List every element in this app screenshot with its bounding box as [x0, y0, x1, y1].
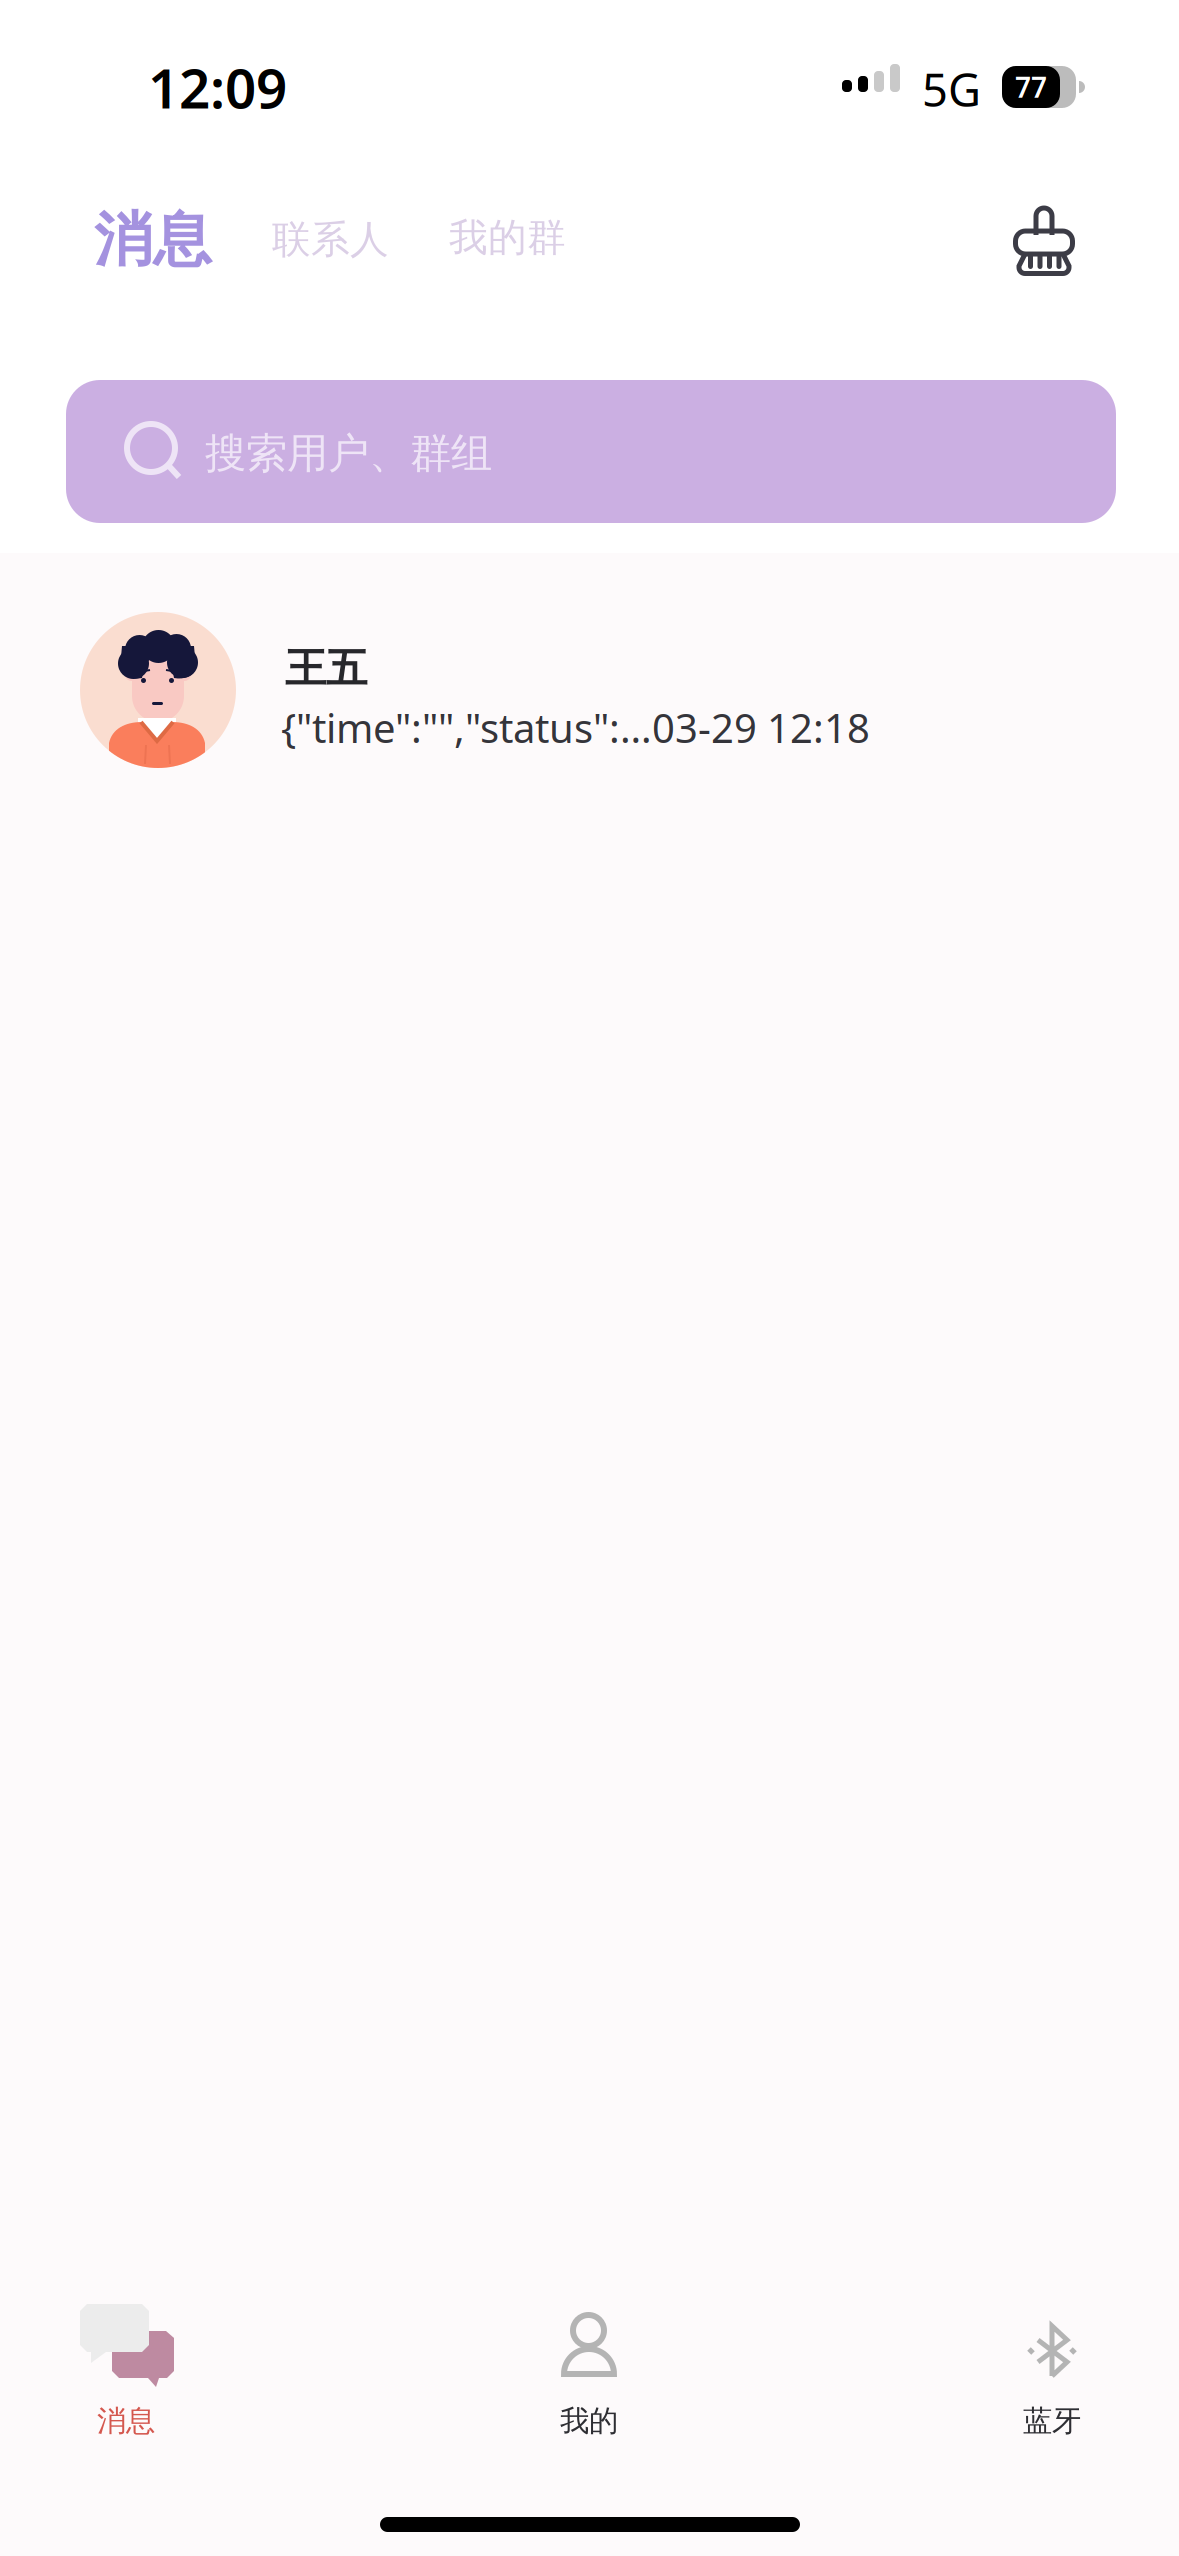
staticText: 我的群 — [449, 214, 566, 261]
button[interactable]: 消息 — [88, 194, 218, 286]
staticText: 消息 — [97, 2403, 155, 2439]
staticText: 5G — [922, 59, 981, 119]
staticText: 消息 — [94, 204, 212, 276]
button[interactable]: 蓝牙 — [926, 2290, 1178, 2470]
button[interactable]: 王五 — [0, 590, 1179, 790]
button[interactable]: 清理消息 — [1014, 203, 1074, 277]
staticText: 搜索用户、群组 — [205, 428, 492, 479]
button[interactable]: 搜索用户、群组 — [66, 380, 1116, 523]
button[interactable]: 联系人 — [266, 206, 395, 273]
staticText: 我的 — [560, 2403, 618, 2439]
staticText: {"time":"","status":…03-29 12:18 — [281, 701, 870, 754]
button[interactable]: 我的 — [463, 2290, 715, 2470]
button[interactable]: 我的群 — [443, 204, 572, 271]
staticText: 联系人 — [272, 216, 389, 263]
staticText: 王五 — [285, 643, 367, 694]
staticText: 77 — [1015, 68, 1047, 106]
staticText: 蓝牙 — [1023, 2403, 1081, 2439]
button[interactable]: 消息 — [0, 2290, 252, 2470]
staticText: 12:09 — [148, 51, 287, 124]
